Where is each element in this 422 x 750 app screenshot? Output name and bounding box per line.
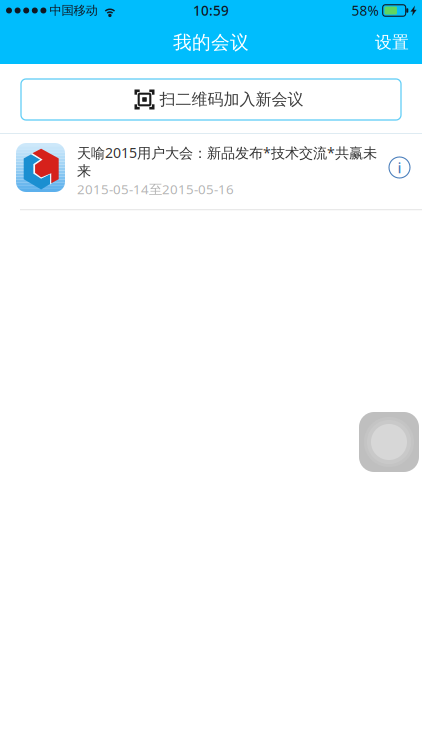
staticText: 2015-05-14至2015-05-16: [77, 180, 234, 198]
staticText: 中国移动: [49, 3, 97, 18]
staticText: 天喻2015用户大会：新品发布*技术交流*共赢未来: [77, 143, 377, 180]
button[interactable]: 扫二维码加入新会议: [21, 79, 401, 120]
staticText: i: [397, 158, 401, 177]
staticText: 58%: [351, 1, 378, 20]
button[interactable]: 天喻2015用户大会：新品发布*技术交流*共赢未来: [0, 134, 422, 209]
staticText: 10:59: [193, 1, 229, 20]
staticText: 扫二维码加入新会议: [159, 89, 303, 110]
staticText: 我的会议: [173, 31, 249, 54]
staticText: 设置: [375, 32, 409, 53]
button[interactable]: 设置: [362, 21, 422, 64]
button[interactable]: AssistiveTouch: [359, 412, 419, 472]
